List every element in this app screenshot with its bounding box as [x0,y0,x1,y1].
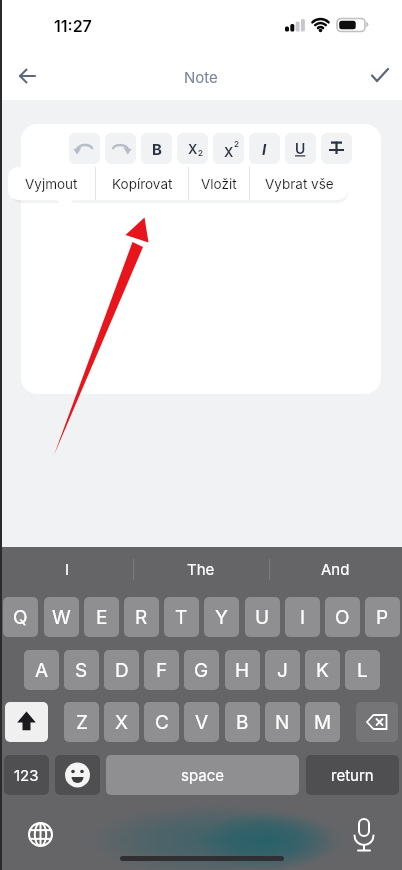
staticText: 11:27 [54,16,92,35]
button[interactable]: Kopírovat [96,167,188,200]
button[interactable]: Y [204,597,239,637]
button[interactable]: B [141,133,172,164]
button[interactable]: E [84,597,119,637]
button[interactable]: W [44,597,79,637]
button[interactable]: G [184,650,219,690]
staticText: W [52,606,71,629]
button[interactable]: H [225,650,260,690]
staticText: P [376,606,389,629]
staticText: B [236,711,249,734]
button[interactable]: F [144,650,179,690]
button[interactable]: N [265,702,300,742]
button[interactable]: S [64,650,99,690]
staticText: Y [215,606,228,629]
button[interactable]: Q [3,597,38,637]
button[interactable]: U [245,597,280,637]
staticText: I [65,560,70,578]
staticText: return [331,766,374,784]
button[interactable]: space [106,755,299,795]
staticText: D [115,659,129,682]
button[interactable] [346,816,382,854]
staticText: R [135,606,148,629]
button[interactable]: And [282,551,388,587]
staticText: E [96,606,108,629]
staticText: J [277,659,288,682]
staticText: S [75,659,88,682]
button[interactable]: P [365,597,400,637]
staticText: U [255,606,270,629]
staticText: Note [184,68,218,86]
button[interactable] [24,818,57,851]
staticText: I [262,140,267,158]
button[interactable]: A [24,650,59,690]
button[interactable]: M [305,702,340,742]
button[interactable]: L [345,650,380,690]
staticText: X [188,141,198,157]
staticText: A [35,659,49,682]
button[interactable]: Vložit [189,167,249,200]
button[interactable]: Z [64,702,99,742]
button[interactable] [362,58,398,94]
button[interactable] [69,133,100,164]
button[interactable]: B [225,702,260,742]
staticText: 2 [198,148,203,158]
button[interactable]: I [14,551,120,587]
staticText: K [316,659,329,682]
staticText: And [321,560,350,578]
button[interactable]: T [164,597,199,637]
button[interactable]: C [144,702,179,742]
staticText: V [195,711,209,734]
staticText: F [156,659,168,682]
staticText: C [155,711,169,734]
button[interactable]: U [285,133,316,164]
button[interactable]: X [104,702,139,742]
staticText: I [300,606,306,629]
staticText: H [235,659,250,682]
button[interactable]: J [265,650,300,690]
staticText: space [181,766,224,784]
staticText: G [194,659,209,682]
button[interactable]: K [305,650,340,690]
button[interactable] [8,60,48,94]
button[interactable]: Vyjmout [8,167,95,200]
staticText: Kopírovat [112,176,173,192]
button[interactable]: X [177,133,208,164]
staticText: O [335,606,350,629]
button[interactable]: I [249,133,280,164]
staticText: 2 [234,139,239,149]
staticText: U [295,140,306,157]
button[interactable]: return [306,755,399,795]
staticText: Vyjmout [25,176,78,192]
staticText: Q [13,606,28,629]
button[interactable]: The [148,551,254,587]
staticText: N [275,711,290,734]
button[interactable]: O [325,597,360,637]
staticText: L [357,659,368,682]
button[interactable] [5,702,48,742]
button[interactable]: 123 [4,755,49,795]
button[interactable] [321,133,352,164]
staticText: The [187,560,215,578]
button[interactable] [105,133,136,164]
button[interactable] [55,755,100,795]
button[interactable] [356,702,398,742]
staticText: X [115,711,128,734]
staticText: Vybrat vše [265,176,334,192]
button[interactable]: Vybrat vše [250,167,348,200]
button[interactable]: R [124,597,159,637]
staticText: B [152,140,162,158]
button[interactable]: I [285,597,320,637]
staticText: Vložit [201,176,237,192]
staticText: 123 [14,766,39,784]
staticText: X [224,144,234,160]
button[interactable]: V [184,702,219,742]
button[interactable]: X [213,133,244,164]
button[interactable]: D [104,650,139,690]
staticText: Z [76,711,88,734]
staticText: T [175,606,188,629]
staticText: M [314,711,332,734]
